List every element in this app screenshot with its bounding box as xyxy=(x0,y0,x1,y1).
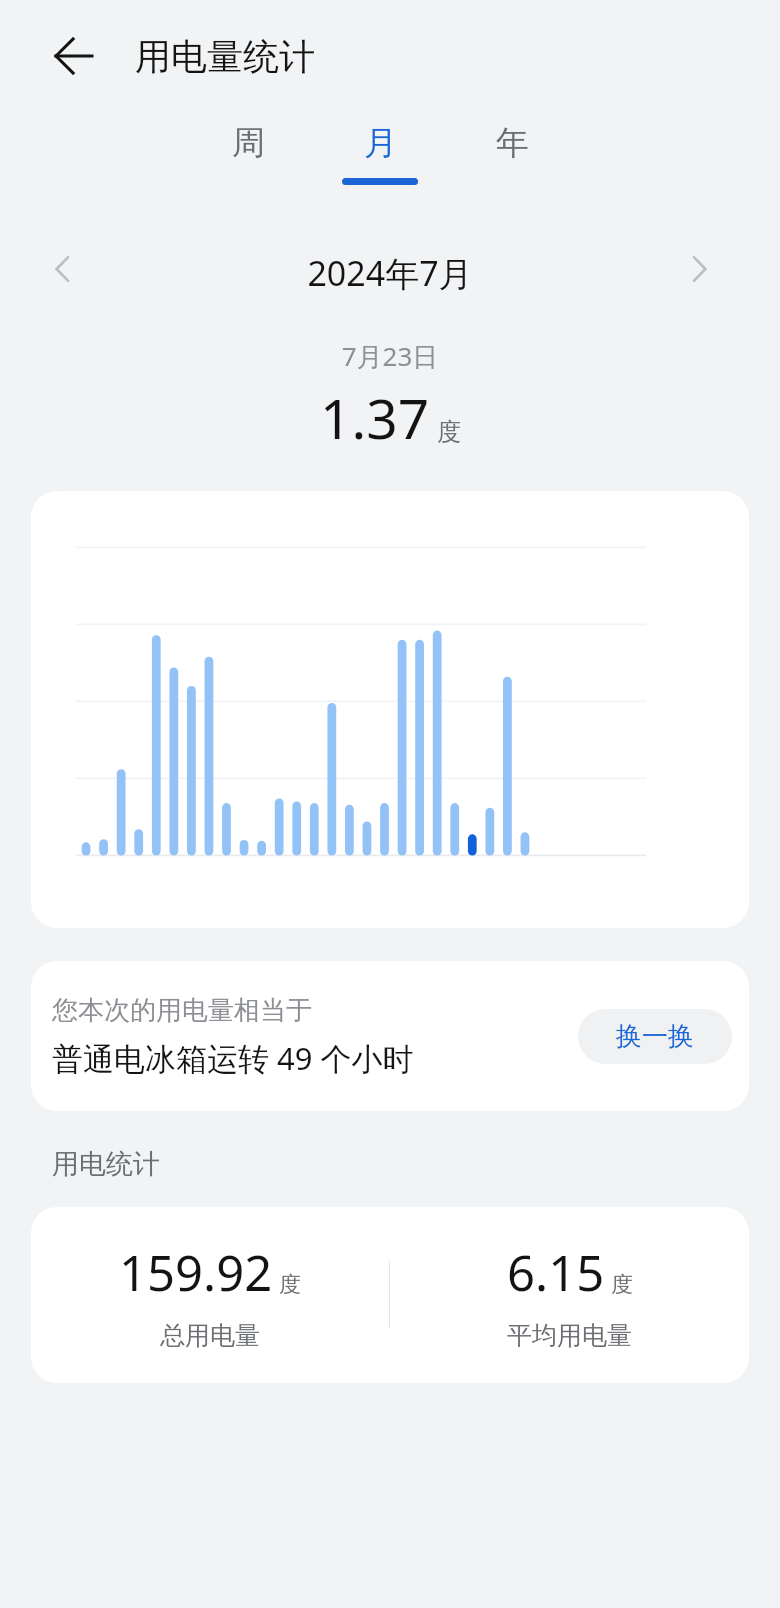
button[interactable]: Previous month xyxy=(34,240,92,298)
staticText: 年 xyxy=(496,122,529,164)
staticText: 1.37 xyxy=(320,380,430,455)
button[interactable]: 6.15 xyxy=(390,1207,749,1383)
button[interactable]: 月 xyxy=(328,116,432,208)
staticText: 用电统计 xyxy=(52,1147,160,1181)
staticText: 度 xyxy=(437,417,461,447)
staticText: 7月23日 xyxy=(0,338,780,374)
staticText: 平均用电量 xyxy=(507,1320,632,1351)
staticText: 度 xyxy=(279,1271,301,1299)
staticText: 度 xyxy=(611,1271,633,1299)
staticText: 2024年7月 xyxy=(0,250,780,296)
staticText: 换一换 xyxy=(616,1020,694,1053)
button[interactable]: 换一换 xyxy=(578,1009,732,1064)
button[interactable]: Back xyxy=(44,26,104,86)
staticText: 159.92 xyxy=(119,1239,273,1306)
staticText: 月 xyxy=(364,122,397,164)
staticText: 您本次的用电量相当于 xyxy=(52,994,312,1027)
button[interactable]: 159.92 xyxy=(31,1207,389,1383)
staticText: 6.15 xyxy=(507,1239,605,1306)
button[interactable]: Next month xyxy=(670,240,728,298)
staticText: 用电量统计 xyxy=(135,34,315,79)
staticText: 总用电量 xyxy=(160,1320,260,1351)
staticText: 普通电冰箱运转 49 个小时 xyxy=(52,1037,414,1079)
button[interactable]: 周 xyxy=(196,116,300,208)
staticText: 周 xyxy=(232,122,265,164)
button[interactable]: 年 xyxy=(460,116,564,208)
